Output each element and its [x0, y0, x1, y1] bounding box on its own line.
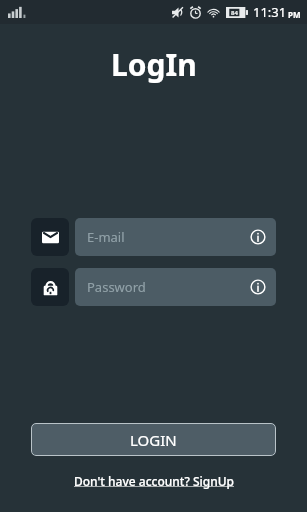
button[interactable]: Password [75, 268, 276, 306]
staticText: LogIn [111, 44, 197, 85]
staticText: Password [87, 278, 146, 296]
button[interactable]: E-mail [75, 218, 276, 256]
staticText: E-mail [87, 228, 125, 246]
button[interactable]: LOGIN [31, 423, 276, 456]
button[interactable]: Password [31, 268, 69, 306]
button[interactable]: Don't have account? SignUp [70, 471, 238, 491]
staticText: 84 [231, 9, 238, 17]
staticText: LOGIN [130, 430, 177, 450]
staticText: PM [288, 9, 301, 20]
staticText: 11:31 [253, 3, 287, 21]
button[interactable]: E-mail [31, 218, 69, 256]
